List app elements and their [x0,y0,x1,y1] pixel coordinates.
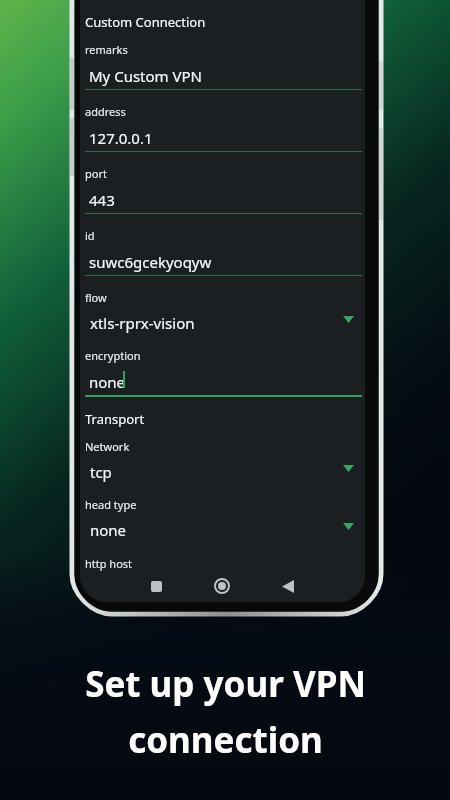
button[interactable]: Home [202,572,242,600]
staticText: address [85,104,126,119]
button[interactable]: Network selector [85,439,362,482]
staticText: head type [85,497,137,512]
staticText: none [90,520,127,540]
button[interactable]: id [85,228,362,276]
staticText: flow [85,290,107,305]
button[interactable]: port [85,166,362,214]
staticText: encryption [85,348,141,363]
button[interactable]: http host [85,555,133,572]
staticText: 443 [89,190,115,210]
button[interactable]: remarks [85,42,362,90]
staticText: connection [128,716,323,764]
button[interactable]: address [85,104,362,152]
button[interactable]: Back [268,572,308,600]
staticText: id [85,228,95,243]
staticText: Network [85,439,130,454]
button[interactable]: Recent apps [136,572,176,600]
staticText: suwc6gcekyoqyw [89,252,212,272]
staticText: xtls-rprx-vision [90,313,195,333]
button[interactable]: encryption [85,348,362,397]
staticText: port [85,166,107,181]
staticText: Transport [85,410,145,428]
staticText: remarks [85,42,128,57]
button[interactable]: head type selector [85,497,362,540]
staticText: tcp [90,462,112,482]
staticText: Set up your VPN [85,660,366,708]
button[interactable]: flow selector [85,290,362,333]
staticText: http host [85,556,133,571]
staticText: My Custom VPN [89,66,202,86]
staticText: 127.0.0.1 [89,128,153,148]
staticText: Custom Connection [85,13,206,31]
staticText: none [89,372,126,392]
